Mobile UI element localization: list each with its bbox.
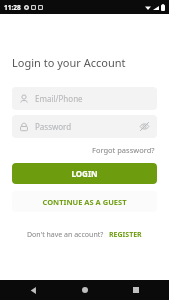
staticText: Login to your Account (12, 55, 126, 70)
button[interactable]: Recent apps (127, 281, 145, 299)
button[interactable]: Show password (139, 121, 150, 132)
staticText: Don't have an account? (27, 230, 104, 240)
button[interactable]: Home (76, 281, 94, 299)
button[interactable]: CONTINUE AS A GUEST (12, 191, 157, 212)
button[interactable]: REGISTER (108, 228, 143, 242)
staticText: Email/Phone (35, 93, 150, 104)
staticText: 11:28 (4, 3, 21, 12)
button[interactable]: LOGIN (12, 163, 157, 184)
staticText: CONTINUE AS A GUEST (42, 197, 127, 207)
staticText: Password (35, 121, 139, 132)
staticText: LOGIN (71, 168, 98, 179)
button[interactable]: Password (12, 115, 157, 138)
button[interactable]: Email/Phone (12, 87, 157, 110)
button[interactable]: Forgot password? (90, 143, 157, 157)
button[interactable]: Back (24, 281, 42, 299)
